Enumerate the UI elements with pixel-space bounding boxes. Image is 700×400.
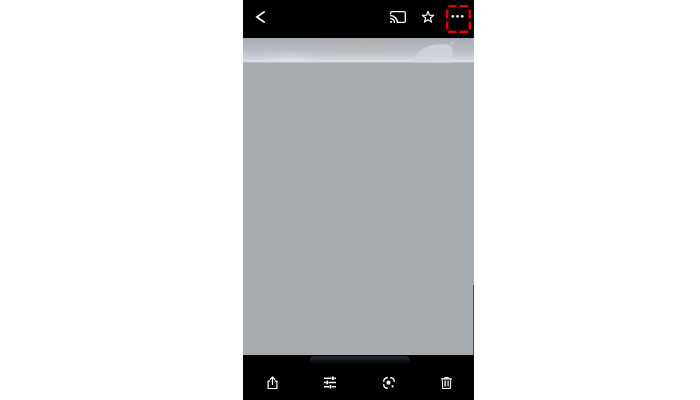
button[interactable]: Edit (310, 365, 350, 400)
button[interactable]: Lens (369, 365, 409, 400)
button[interactable]: Delete (426, 365, 466, 400)
button[interactable]: Back (243, 0, 277, 33)
button[interactable]: Share (252, 365, 292, 400)
button[interactable]: Favorite (414, 0, 442, 33)
button[interactable]: More options (446, 5, 471, 33)
button[interactable]: Cast (384, 0, 412, 33)
